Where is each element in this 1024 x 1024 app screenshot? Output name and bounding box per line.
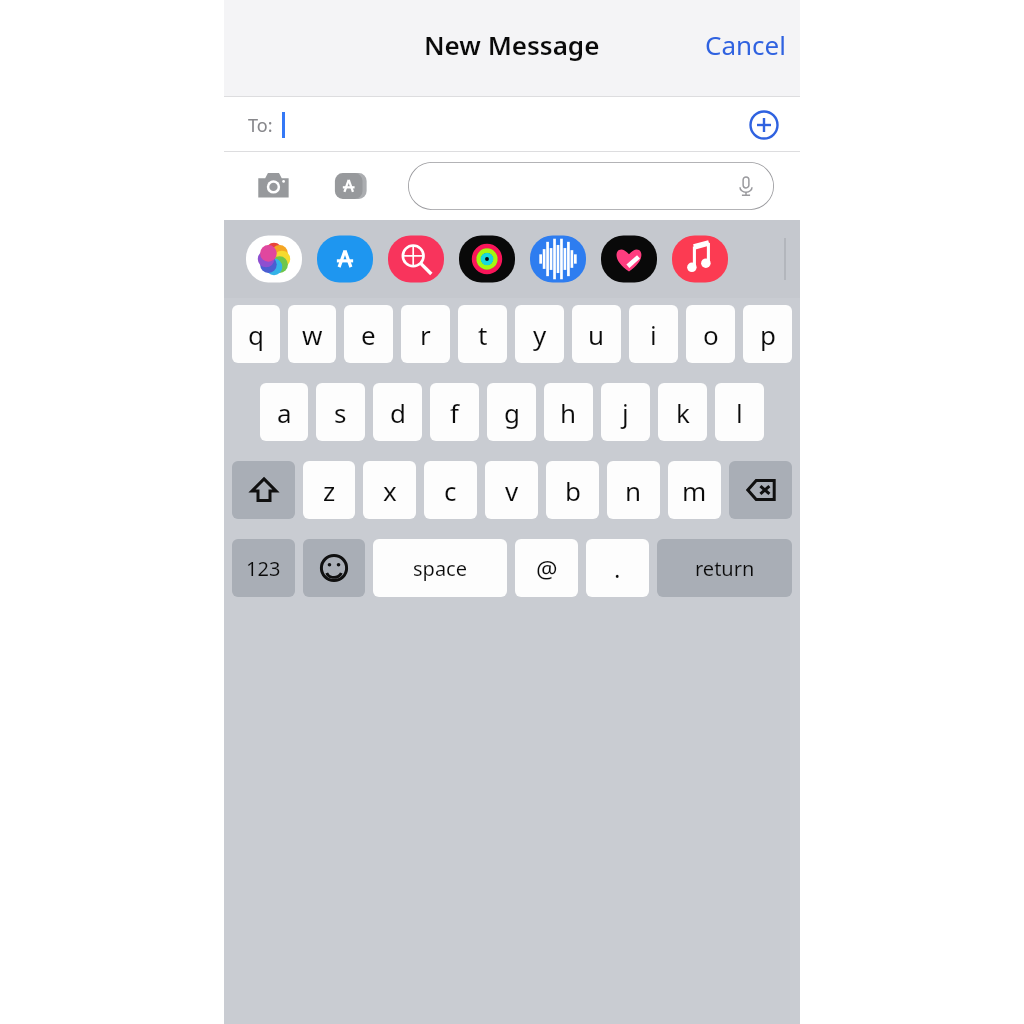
- staticText: m: [682, 473, 707, 508]
- staticText: f: [450, 395, 459, 430]
- staticText: l: [736, 395, 743, 430]
- staticText: c: [444, 473, 457, 508]
- button[interactable]: k: [658, 383, 707, 441]
- staticText: d: [390, 395, 406, 430]
- staticText: New Message: [424, 27, 600, 62]
- button[interactable]: App Store: [328, 163, 374, 209]
- button[interactable]: g: [487, 383, 536, 441]
- button[interactable]: Health: [601, 233, 657, 285]
- button[interactable]: Music: [672, 233, 728, 285]
- staticText: y: [533, 317, 547, 352]
- button[interactable]: b: [546, 461, 599, 519]
- staticText: z: [323, 473, 336, 508]
- button[interactable]: space: [373, 539, 507, 597]
- button[interactable]: p: [743, 305, 792, 363]
- button[interactable]: e: [344, 305, 393, 363]
- button[interactable]: n: [607, 461, 660, 519]
- button[interactable]: j: [601, 383, 650, 441]
- staticText: w: [302, 317, 323, 352]
- button[interactable]: App Store: [317, 233, 373, 285]
- staticText: i: [650, 317, 657, 352]
- staticText: .: [614, 552, 621, 585]
- button[interactable]: f: [430, 383, 479, 441]
- button[interactable]: d: [373, 383, 422, 441]
- staticText: q: [248, 317, 264, 352]
- button[interactable]: z: [303, 461, 355, 519]
- button[interactable]: Backspace: [729, 461, 792, 519]
- button[interactable]: l: [715, 383, 764, 441]
- staticText: k: [676, 395, 690, 430]
- staticText: @: [536, 552, 558, 585]
- button[interactable]: Add contact: [748, 109, 780, 141]
- button[interactable]: Camera: [250, 163, 296, 209]
- button[interactable]: t: [458, 305, 507, 363]
- button[interactable]: Activity: [459, 233, 515, 285]
- staticText: x: [383, 473, 397, 508]
- button[interactable]: Shift: [232, 461, 295, 519]
- button[interactable]: x: [363, 461, 416, 519]
- button[interactable]: To:: [224, 97, 800, 152]
- button[interactable]: .: [586, 539, 649, 597]
- staticText: v: [505, 473, 519, 508]
- button[interactable]: return: [657, 539, 792, 597]
- button[interactable]: 123: [232, 539, 295, 597]
- staticText: space: [413, 555, 467, 582]
- button[interactable]: Voice Memos: [530, 233, 586, 285]
- staticText: return: [695, 555, 755, 582]
- button[interactable]: w: [288, 305, 336, 363]
- staticText: s: [334, 395, 347, 430]
- button[interactable]: c: [424, 461, 477, 519]
- staticText: To:: [248, 113, 273, 138]
- staticText: Cancel: [705, 27, 786, 62]
- button[interactable]: Emoji: [303, 539, 365, 597]
- button[interactable]: Cancel: [691, 17, 800, 72]
- staticText: r: [420, 317, 431, 352]
- button[interactable]: o: [686, 305, 735, 363]
- button[interactable]: y: [515, 305, 564, 363]
- button[interactable]: u: [572, 305, 621, 363]
- button[interactable]: r: [401, 305, 450, 363]
- staticText: u: [588, 317, 605, 352]
- button[interactable]: Images: [388, 233, 444, 285]
- staticText: h: [560, 395, 577, 430]
- button[interactable]: Photos: [246, 233, 302, 285]
- button[interactable]: i: [629, 305, 678, 363]
- staticText: n: [625, 473, 642, 508]
- button[interactable]: v: [485, 461, 538, 519]
- button[interactable]: Dictate: [408, 162, 774, 210]
- staticText: a: [277, 395, 292, 430]
- button[interactable]: @: [515, 539, 578, 597]
- staticText: o: [703, 317, 719, 352]
- button[interactable]: h: [544, 383, 593, 441]
- other: Dictate: [734, 174, 758, 198]
- button[interactable]: a: [260, 383, 308, 441]
- staticText: g: [504, 395, 520, 430]
- staticText: b: [565, 473, 581, 508]
- staticText: 123: [246, 555, 281, 582]
- button[interactable]: s: [316, 383, 365, 441]
- button[interactable]: m: [668, 461, 721, 519]
- staticText: e: [361, 317, 376, 352]
- button[interactable]: q: [232, 305, 280, 363]
- staticText: t: [478, 317, 488, 352]
- staticText: j: [622, 395, 629, 430]
- staticText: p: [760, 317, 776, 352]
